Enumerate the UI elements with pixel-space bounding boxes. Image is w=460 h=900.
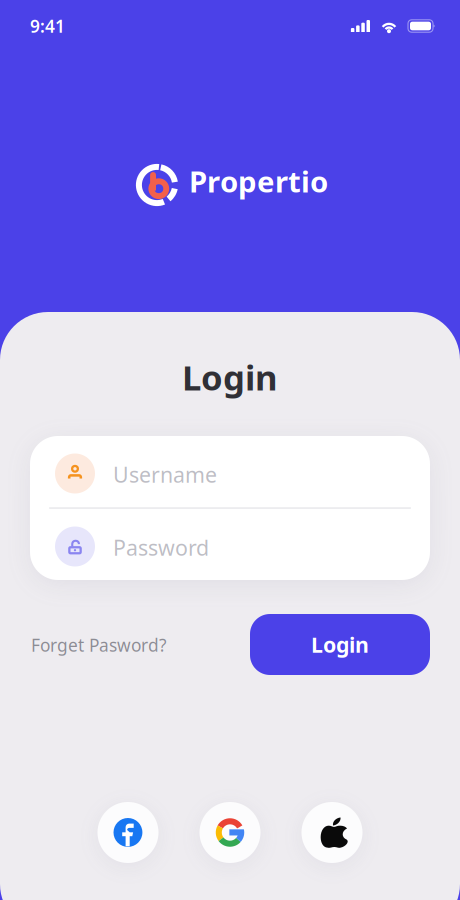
staticText: Login: [311, 630, 369, 659]
staticText: Forget Pasword?: [31, 633, 167, 656]
staticText: Propertio: [189, 161, 328, 200]
button[interactable]: Sign in with Facebook: [97, 802, 158, 863]
staticText: Login: [182, 354, 278, 400]
button[interactable]: Sign in with Apple: [301, 802, 362, 863]
button[interactable]: Forget Pasword?: [31, 628, 171, 662]
button[interactable]: Sign in with Google: [199, 802, 260, 863]
button[interactable]: Login: [250, 614, 430, 675]
staticText: 9:41: [30, 14, 65, 37]
button[interactable]: Password: [30, 508, 430, 580]
staticText: Username: [113, 460, 217, 489]
button[interactable]: Username: [30, 435, 430, 507]
staticText: Password: [113, 533, 209, 562]
